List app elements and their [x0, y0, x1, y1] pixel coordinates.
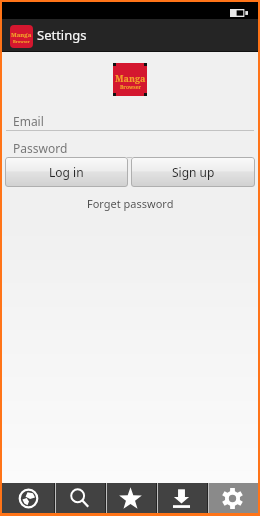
button[interactable]: Forget password — [2, 196, 258, 211]
staticText: Forget password — [87, 196, 174, 211]
button[interactable]: Browse — [2, 483, 54, 513]
staticText: Browser — [120, 84, 142, 91]
staticText: Password — [13, 140, 68, 156]
button[interactable]: Email — [6, 111, 254, 131]
staticText: Browser — [13, 39, 30, 44]
button[interactable]: Downloads — [156, 483, 207, 513]
staticText: Sign up — [172, 164, 215, 180]
staticText: Settings — [37, 26, 87, 44]
button[interactable]: App icon — [10, 25, 33, 48]
staticText: Log in — [49, 164, 84, 180]
staticText: Manga — [11, 31, 32, 39]
staticText: Email — [13, 113, 44, 129]
button[interactable]: Sign up — [131, 157, 255, 187]
button[interactable]: Password — [6, 138, 254, 158]
button[interactable]: Favorites — [105, 483, 156, 513]
button[interactable]: Settings — [207, 483, 258, 513]
button[interactable]: Search — [54, 483, 105, 513]
staticText: Manga — [115, 72, 146, 84]
button[interactable]: Log in — [5, 157, 128, 187]
